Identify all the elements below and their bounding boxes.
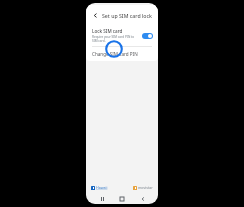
button[interactable]: Recent apps — [97, 194, 107, 204]
staticText: Lock SIM card — [92, 28, 123, 34]
staticText: Change SIM card PIN — [92, 51, 138, 57]
button[interactable]: Lock SIM card — [86, 25, 158, 46]
button[interactable]: Back — [138, 194, 148, 204]
button[interactable]: movistar — [133, 185, 153, 190]
staticText: Require your SIM card PIN to unlock and … — [92, 35, 139, 39]
button[interactable]: Lock SIM card toggle — [142, 33, 153, 39]
button[interactable]: Hawaii — [91, 185, 108, 190]
staticText: movistar — [138, 185, 153, 190]
staticText: SIM card. — [92, 39, 106, 43]
button[interactable]: Change SIM card PIN — [86, 47, 158, 61]
button[interactable]: Home — [117, 194, 127, 204]
staticText: Set up SIM card lock — [102, 12, 152, 19]
staticText: Hawaii — [96, 185, 108, 190]
button[interactable]: Back — [91, 11, 100, 20]
